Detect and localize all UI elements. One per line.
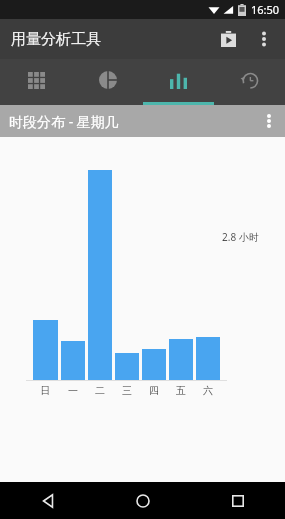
button[interactable]: History <box>214 59 285 105</box>
staticText: 时段分布 - 星期几 <box>9 112 119 131</box>
staticText: 用量分析工具 <box>11 30 101 49</box>
staticText: 2.8 小时 <box>222 230 259 244</box>
staticText: 16:50 <box>251 2 280 17</box>
staticText: 一 <box>61 384 85 397</box>
button[interactable]: Back <box>0 482 95 519</box>
button[interactable]: Pie chart <box>72 59 143 105</box>
button[interactable]: Work apps <box>209 20 247 58</box>
staticText: 五 <box>169 384 193 397</box>
staticText: 四 <box>142 384 166 397</box>
button[interactable]: Apps list <box>0 59 72 105</box>
button[interactable]: Chart options <box>253 105 285 137</box>
button[interactable]: Bar chart <box>143 59 214 105</box>
button[interactable]: Home <box>95 482 190 519</box>
staticText: 日 <box>33 384 58 397</box>
staticText: 六 <box>196 384 220 397</box>
staticText: 二 <box>88 384 112 397</box>
button[interactable]: Recent apps <box>190 482 285 519</box>
button[interactable]: 时段分布 - 星期几 <box>0 105 285 137</box>
button[interactable]: More options <box>247 22 281 56</box>
staticText: 三 <box>115 384 139 397</box>
